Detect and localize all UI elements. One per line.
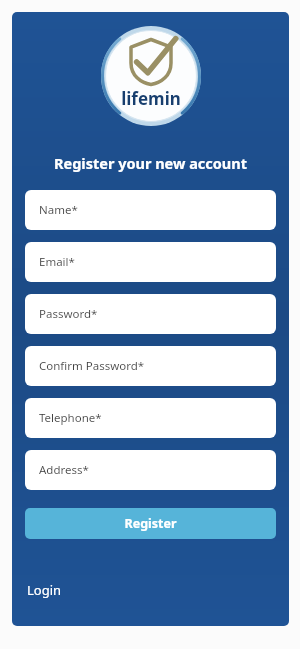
staticText: Name* [39,202,78,218]
button[interactable]: Login [25,579,64,601]
staticText: Password* [39,306,98,322]
staticText: Address* [39,462,89,478]
button[interactable]: Confirm Password* [25,346,276,386]
staticText: Register [124,515,177,532]
button[interactable]: Address* [25,450,276,490]
button[interactable]: Name* [25,190,276,230]
staticText: Confirm Password* [39,358,145,374]
staticText: Telephone* [39,410,102,426]
staticText: Login [27,581,62,599]
button[interactable]: Register [25,508,276,539]
button[interactable]: Password* [25,294,276,334]
button[interactable]: Telephone* [25,398,276,438]
button[interactable]: Email* [25,242,276,282]
staticText: Register your new account [54,153,247,173]
staticText: lifemin [121,87,181,110]
staticText: Email* [39,254,75,270]
